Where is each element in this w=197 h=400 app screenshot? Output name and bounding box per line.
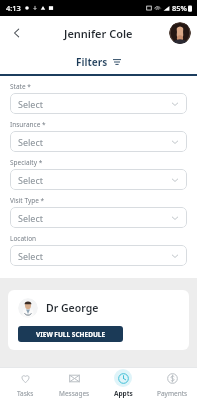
button[interactable]: Select: [10, 93, 187, 114]
button[interactable]: Select: [10, 131, 187, 152]
staticText: Location: [10, 234, 37, 243]
staticText: Payments: [157, 389, 188, 398]
staticText: 4:13: [6, 3, 21, 13]
staticText: Specialty *: [10, 158, 43, 167]
button[interactable]: Payments: [148, 367, 196, 400]
button[interactable]: Select: [10, 207, 187, 228]
button[interactable]: Filters: [70, 53, 128, 71]
staticText: Select: [18, 98, 43, 110]
staticText: Filters: [76, 55, 108, 69]
staticText: State *: [10, 82, 31, 91]
staticText: Select: [18, 136, 43, 148]
button[interactable]: Dr George: [8, 290, 189, 350]
button[interactable]: Select: [10, 169, 187, 190]
button[interactable]: Back: [4, 20, 30, 46]
button[interactable]: Profile: [169, 22, 191, 44]
staticText: Jennifer Cole: [64, 26, 133, 41]
staticText: Select: [18, 212, 43, 224]
staticText: Select: [18, 250, 43, 262]
staticText: Messages: [59, 389, 90, 398]
staticText: Visit Type *: [10, 196, 45, 205]
staticText: VIEW FULL SCHEDULE: [36, 330, 106, 339]
button[interactable]: Messages: [50, 367, 98, 400]
staticText: Select: [18, 174, 43, 186]
staticText: Tasks: [17, 389, 34, 398]
button[interactable]: VIEW FULL SCHEDULE: [18, 326, 123, 342]
button[interactable]: Select: [10, 245, 187, 266]
button[interactable]: Appts: [99, 367, 147, 400]
button[interactable]: Tasks: [1, 367, 49, 400]
staticText: Appts: [114, 389, 133, 398]
staticText: 85%: [172, 3, 187, 13]
staticText: Dr George: [46, 301, 99, 315]
staticText: Insurance *: [10, 120, 46, 129]
